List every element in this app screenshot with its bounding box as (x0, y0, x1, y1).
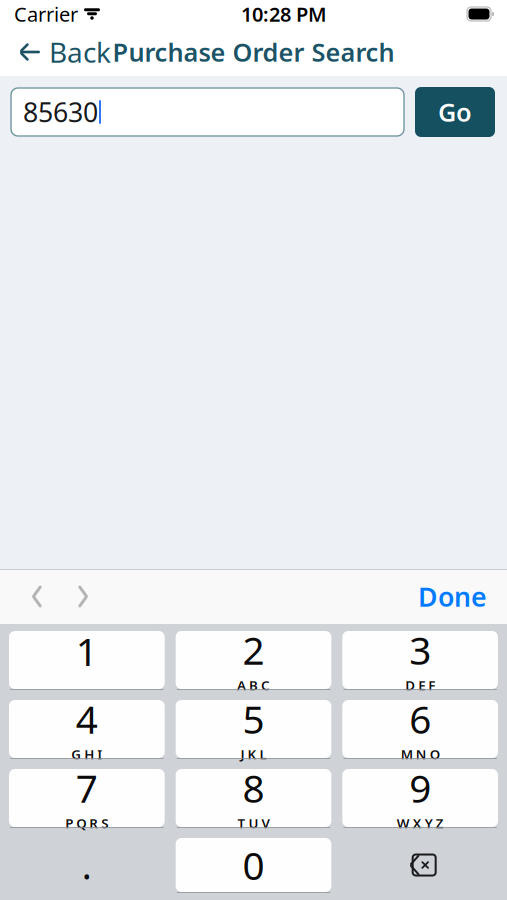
staticText: Carrier (14, 1, 78, 27)
button[interactable]: Decimal point (9, 838, 165, 892)
button[interactable]: 9 (342, 769, 498, 827)
button[interactable]: 5 (176, 700, 331, 758)
button[interactable]: Go (415, 87, 495, 137)
button[interactable]: 6 (342, 700, 498, 758)
button[interactable]: 1 (9, 631, 165, 689)
staticText: M N O (401, 745, 440, 763)
staticText: Go (438, 95, 472, 129)
staticText: . (82, 840, 92, 890)
button[interactable]: 7 (9, 769, 165, 827)
staticText: 3 (409, 624, 431, 675)
staticText: P Q R S (65, 814, 108, 832)
staticText: T U V (237, 814, 269, 832)
button[interactable]: 4 (9, 700, 165, 758)
staticText: D E F (405, 676, 435, 694)
button[interactable]: Delete (342, 838, 498, 892)
staticText: 5 (242, 693, 264, 744)
staticText: 85630 (23, 94, 98, 130)
staticText: 1 (76, 625, 98, 677)
staticText: 2 (242, 624, 264, 675)
button[interactable]: 3 (342, 631, 498, 689)
staticText: 9 (409, 762, 431, 813)
staticText: 10:28 PM (241, 1, 327, 27)
staticText: 4 (76, 693, 98, 744)
button[interactable]: 0 (176, 838, 331, 892)
staticText: 7 (76, 762, 98, 813)
button[interactable]: Done (402, 569, 503, 623)
staticText: Back (49, 33, 111, 71)
staticText: Purchase Order Search (112, 35, 394, 69)
button[interactable]: 2 (176, 631, 331, 689)
staticText: G H I (71, 745, 102, 763)
staticText: 6 (409, 693, 431, 744)
staticText: W X Y Z (397, 814, 444, 832)
staticText: A B C (237, 676, 270, 694)
staticText: Done (418, 579, 487, 614)
staticText: 0 (242, 839, 264, 891)
button[interactable]: 8 (176, 769, 331, 827)
button[interactable]: Previous field (14, 569, 60, 623)
staticText: J K L (240, 745, 266, 763)
button[interactable]: Next field (60, 569, 106, 623)
button[interactable]: Back (0, 28, 121, 76)
staticText: 8 (242, 762, 264, 813)
